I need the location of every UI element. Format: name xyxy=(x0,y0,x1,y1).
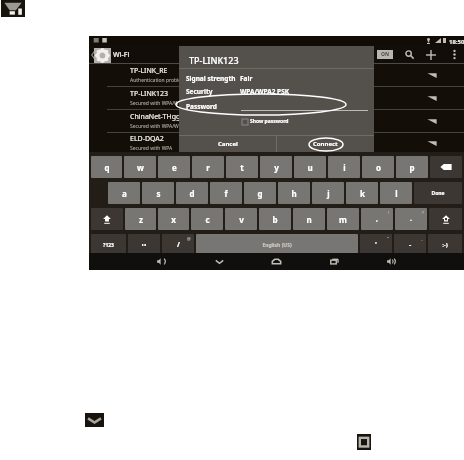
staticText: x xyxy=(171,214,176,225)
button[interactable]: Input method xyxy=(128,234,160,256)
button[interactable]: l xyxy=(380,182,412,204)
button[interactable]: TP-LINK_RE xyxy=(89,64,464,86)
staticText: c xyxy=(205,214,210,225)
button[interactable]: m xyxy=(327,208,359,230)
staticText: English (US) xyxy=(262,242,292,249)
button[interactable]: d xyxy=(176,182,208,204)
button[interactable]: English (US) xyxy=(196,234,358,256)
button[interactable]: a xyxy=(108,182,140,204)
staticText: " xyxy=(387,236,389,241)
button[interactable]: ' xyxy=(360,234,392,256)
staticText: n xyxy=(306,214,312,225)
button[interactable]: ELD-DQA2 xyxy=(89,133,464,152)
staticText: q xyxy=(104,162,110,173)
button[interactable]: f xyxy=(210,182,242,204)
staticText: u xyxy=(307,162,313,173)
button[interactable]: y xyxy=(260,156,292,178)
button[interactable]: h xyxy=(278,182,310,204)
staticText: @ xyxy=(187,236,191,241)
staticText: f xyxy=(224,188,228,199)
staticText: t xyxy=(240,162,244,173)
button[interactable]: Home xyxy=(264,253,288,270)
button[interactable]: ChinaNet-THgg xyxy=(89,110,464,132)
button[interactable]: - xyxy=(394,234,426,256)
button[interactable]: s xyxy=(142,182,174,204)
button[interactable]: TP-LINK123 xyxy=(89,87,464,109)
button[interactable]: q xyxy=(91,156,122,178)
staticText: k xyxy=(360,188,365,199)
staticText: Secured with WPA/WP xyxy=(130,100,182,107)
staticText: TP-LINK_RE xyxy=(130,66,168,76)
staticText: i xyxy=(343,162,346,173)
staticText: 18:50 xyxy=(449,38,464,46)
button[interactable]: Back xyxy=(207,253,231,270)
staticText: WPA/WPA2 PSK xyxy=(240,87,290,96)
button[interactable]: o xyxy=(362,156,394,178)
button[interactable]: p xyxy=(396,156,428,178)
button[interactable]: w xyxy=(124,156,156,178)
button[interactable]: Done xyxy=(414,182,462,204)
staticText: Cancel xyxy=(218,140,238,148)
staticText: ChinaNet-THgg xyxy=(130,112,181,122)
staticText: :-) xyxy=(442,241,448,249)
button[interactable]: Recent apps xyxy=(322,253,346,270)
staticText: s xyxy=(156,188,161,199)
staticText: Fair xyxy=(240,74,253,83)
staticText: Secured with WPA xyxy=(130,145,173,152)
button[interactable]: t xyxy=(226,156,258,178)
staticText: ?123 xyxy=(103,242,114,249)
button[interactable]: ?123 xyxy=(91,234,126,256)
button[interactable]: Cancel xyxy=(179,136,276,152)
staticText: p xyxy=(409,162,415,173)
staticText: ! xyxy=(388,210,390,215)
button[interactable]: , xyxy=(361,208,393,230)
staticText: y xyxy=(274,162,279,173)
button[interactable]: z xyxy=(125,208,156,230)
staticText: Authentication problem xyxy=(130,77,186,84)
button[interactable]: Caps lock xyxy=(429,208,462,230)
button[interactable]: More options xyxy=(446,45,462,64)
staticText: ? xyxy=(422,210,424,215)
staticText: - xyxy=(409,240,412,250)
button[interactable]: n xyxy=(293,208,325,230)
button[interactable]: Backspace xyxy=(430,156,462,178)
button[interactable]: . xyxy=(395,208,427,230)
staticText: _ xyxy=(421,236,423,241)
staticText: a xyxy=(122,188,127,199)
button[interactable]: Connect xyxy=(277,136,374,152)
button[interactable]: Volume up xyxy=(379,253,403,270)
button[interactable]: k xyxy=(346,182,378,204)
staticText: Done xyxy=(431,190,445,197)
button[interactable]: e xyxy=(158,156,190,178)
button[interactable]: / xyxy=(162,234,194,256)
staticText: Password xyxy=(186,102,217,111)
button[interactable]: c xyxy=(191,208,223,230)
staticText: g xyxy=(257,188,263,199)
staticText: r xyxy=(206,162,210,173)
staticText: TP-LINK123 xyxy=(130,89,169,99)
button[interactable]: Show password xyxy=(242,118,289,125)
button[interactable]: Wi-Fi on xyxy=(377,50,393,59)
staticText: ON xyxy=(381,51,390,58)
staticText: ' xyxy=(375,240,377,250)
button[interactable]: Wi-Fi settings xyxy=(1,0,25,17)
button[interactable]: j xyxy=(312,182,344,204)
button[interactable]: x xyxy=(158,208,189,230)
button[interactable]: Navigate up xyxy=(89,45,115,64)
button[interactable]: v xyxy=(225,208,257,230)
staticText: Secured with WPA/WP xyxy=(130,123,182,130)
staticText: Security xyxy=(186,87,213,96)
button[interactable]: u xyxy=(294,156,326,178)
staticText: . xyxy=(410,214,412,224)
button[interactable]: :-) xyxy=(428,234,462,256)
button[interactable]: Shift xyxy=(91,208,123,230)
staticText: m xyxy=(339,214,347,225)
button[interactable]: r xyxy=(192,156,224,178)
staticText: w xyxy=(137,162,144,173)
button[interactable]: Add network xyxy=(423,45,439,64)
button[interactable]: b xyxy=(259,208,291,230)
button[interactable]: Volume down xyxy=(149,253,173,270)
button[interactable]: Scan xyxy=(401,45,417,64)
button[interactable]: i xyxy=(328,156,360,178)
button[interactable]: g xyxy=(244,182,276,204)
